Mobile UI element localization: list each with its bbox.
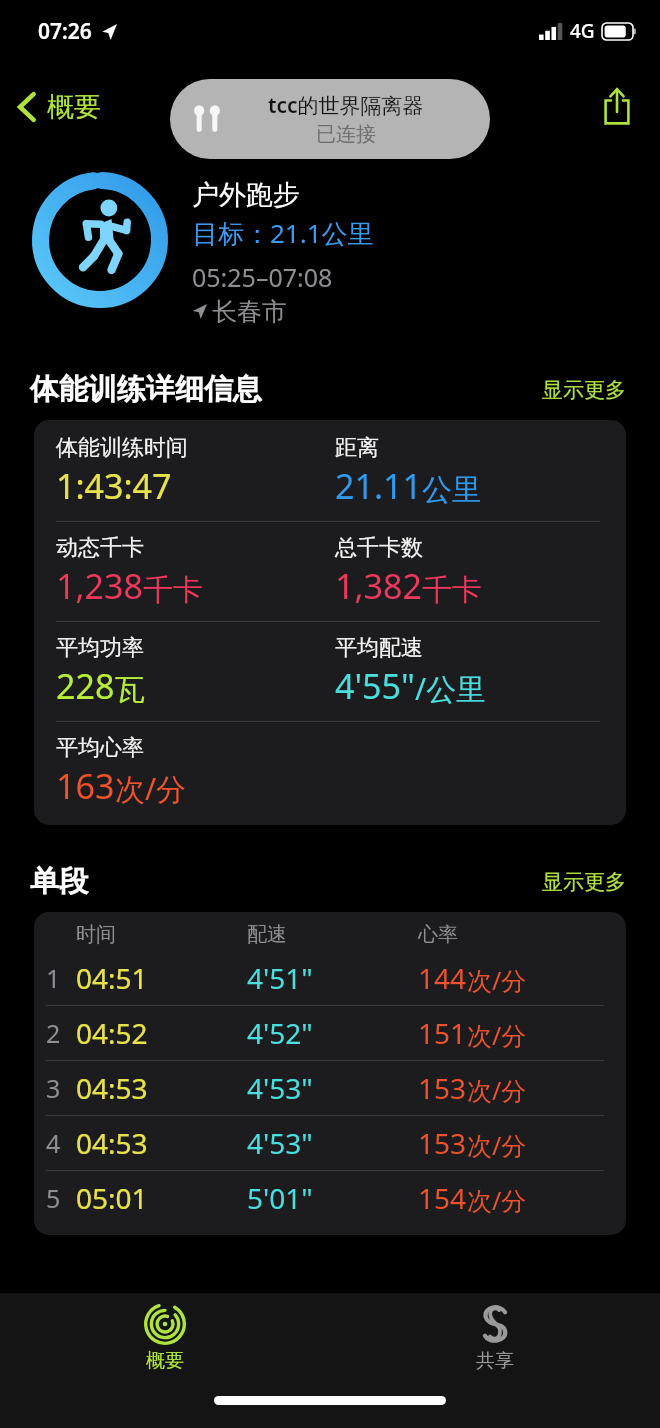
button[interactable]: 共享 [330, 1293, 660, 1385]
staticText: 时间 [76, 922, 116, 947]
staticText: 户外跑步 [192, 178, 300, 212]
staticText: 配速 [247, 922, 287, 947]
staticText: 153 [418, 1069, 467, 1107]
staticText: 次/分 [115, 768, 187, 809]
staticText: 1 [46, 961, 76, 995]
staticText: 5'01" [247, 1179, 313, 1217]
staticText: 4'53" [247, 1124, 313, 1162]
staticText: 21.11 [335, 463, 422, 509]
staticText: 228 [56, 663, 115, 709]
staticText: 153 [418, 1124, 467, 1162]
staticText: 次/分 [467, 1073, 527, 1107]
staticText: 距离 [335, 434, 379, 462]
staticText: 1,238 [56, 563, 143, 609]
staticText: 显示更多 [542, 377, 626, 403]
staticText: 4 [46, 1126, 76, 1160]
staticText: 体能训练详细信息 [30, 371, 262, 408]
staticText: 动态千卡 [56, 534, 144, 562]
staticText: 次/分 [467, 963, 527, 997]
staticText: 151 [418, 1014, 467, 1052]
staticText: 4'55" [335, 663, 415, 709]
staticText: /公里 [415, 668, 487, 709]
staticText: 154 [418, 1179, 467, 1217]
staticText: 已连接 [316, 122, 376, 147]
button[interactable]: 体能训练时间 [34, 420, 626, 825]
staticText: 144 [418, 959, 467, 997]
button[interactable]: tcc的世界隔离器 [170, 79, 490, 159]
staticText: 目标：21.1公里 [192, 215, 374, 251]
staticText: 单段 [30, 863, 88, 900]
staticText: 1:43:47 [56, 463, 172, 509]
staticText: 长春市 [212, 296, 287, 327]
staticText: 心率 [418, 922, 458, 947]
staticText: 平均心率 [56, 734, 144, 762]
staticText: 4'52" [247, 1014, 313, 1052]
staticText: 163 [56, 763, 115, 809]
button[interactable]: 显示更多 [538, 373, 630, 407]
staticText: 4'53" [247, 1069, 313, 1107]
staticText: 4'51" [247, 959, 313, 997]
staticText: 3 [46, 1071, 76, 1105]
staticText: 05:25–07:08 [192, 260, 333, 294]
staticText: 总千卡数 [335, 534, 423, 562]
staticText: 07:26 [38, 17, 92, 46]
staticText: 04:52 [76, 1014, 148, 1052]
button[interactable]: 概要 [0, 82, 115, 132]
staticText: 体能训练时间 [56, 434, 188, 462]
button[interactable]: 概要 [0, 1293, 330, 1385]
staticText: 次/分 [467, 1018, 527, 1052]
staticText: 1,382 [335, 563, 422, 609]
staticText: 04:53 [76, 1124, 148, 1162]
staticText: 5 [46, 1181, 76, 1215]
button[interactable]: 显示更多 [538, 865, 630, 899]
staticText: 显示更多 [542, 869, 626, 895]
button[interactable]: 5 [34, 1171, 626, 1225]
staticText: 04:51 [76, 959, 148, 997]
button[interactable]: 4 [34, 1116, 626, 1170]
staticText: 概要 [47, 90, 101, 124]
staticText: 4G [570, 18, 595, 44]
staticText: tcc的世界隔离器 [268, 91, 424, 120]
staticText: 千卡 [422, 571, 482, 609]
staticText: 05:01 [76, 1179, 148, 1217]
staticText: 次/分 [467, 1183, 527, 1217]
button[interactable]: 2 [34, 1006, 626, 1060]
button[interactable]: 3 [34, 1061, 626, 1115]
staticText: 平均配速 [335, 634, 423, 662]
staticText: 平均功率 [56, 634, 144, 662]
staticText: 共享 [476, 1349, 514, 1373]
button[interactable]: Share [588, 78, 646, 136]
staticText: 概要 [146, 1349, 184, 1373]
staticText: 04:53 [76, 1069, 148, 1107]
staticText: 公里 [422, 471, 482, 509]
button[interactable]: 1 [34, 951, 626, 1005]
staticText: 次/分 [467, 1128, 527, 1162]
staticText: 千卡 [143, 571, 203, 609]
staticText: 瓦 [115, 671, 145, 709]
staticText: 2 [46, 1016, 76, 1050]
